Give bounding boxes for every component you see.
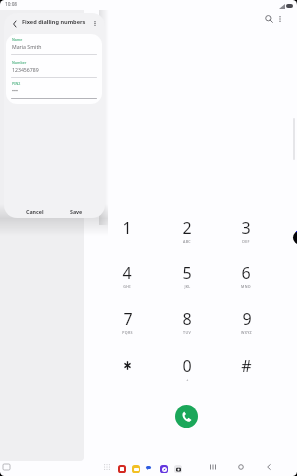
staticText: 123456789 [12,66,39,73]
staticText: 5 [182,262,192,284]
staticText: Name [12,37,23,42]
button[interactable]: Notes app [118,465,126,473]
button[interactable]: 2 [163,217,211,251]
staticText: DEF [242,239,250,244]
button[interactable]: 5 [163,262,211,296]
button[interactable]: Back [7,17,21,31]
staticText: TUV [183,330,191,335]
staticText: Maria Smith [12,43,42,50]
staticText: ABC [183,239,191,244]
button[interactable]: 4 [103,262,151,296]
button[interactable]: More options [272,11,288,27]
staticText: PIN2 [12,81,21,86]
staticText: WXYZ [241,330,252,335]
staticText: GHI [123,284,131,289]
button[interactable]: Browser app [160,465,168,473]
staticText: MNO [241,284,251,289]
staticText: JKL [184,284,191,289]
staticText: 3 [241,217,251,239]
staticText: Number [12,60,27,65]
button[interactable]: 3 [222,217,270,251]
button[interactable]: 9 [222,308,270,342]
staticText: 6 [241,262,251,284]
staticText: 4 [122,262,132,284]
button[interactable]: Camera app [174,465,182,473]
staticText: 1 [122,217,132,239]
staticText: 0 [182,355,192,377]
button[interactable]: 1 [103,217,151,251]
staticText: 7 [123,308,133,330]
button[interactable]: Call [175,405,198,428]
button[interactable]: Cancel [15,203,55,218]
staticText: 8 [182,308,192,330]
button[interactable]: Files app [132,465,140,473]
staticText: 10:08 [5,1,18,7]
staticText: 2 [182,217,192,239]
button[interactable] [103,355,151,389]
button[interactable]: 0 [163,355,211,389]
button[interactable]: Search [261,11,277,27]
button[interactable]: Save [57,203,95,218]
staticText: Save [70,208,83,215]
staticText: ••• [12,87,18,94]
button[interactable]: # [222,355,270,389]
staticText: + [186,377,189,382]
staticText: Cancel [26,208,44,215]
button[interactable]: 7 [103,308,151,342]
button[interactable]: 6 [222,262,270,296]
staticText: PQRS [122,330,133,335]
staticText: # [241,355,252,377]
button[interactable]: 8 [163,308,211,342]
button[interactable]: Messages app [146,466,151,470]
button[interactable]: More options [88,16,102,30]
staticText: 9 [242,308,252,330]
staticText: Fixed dialling numbers [22,18,86,26]
